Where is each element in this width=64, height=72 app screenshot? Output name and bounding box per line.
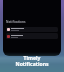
staticText: Timely Notifications (15, 55, 49, 68)
button[interactable] (6, 27, 58, 32)
button[interactable] (6, 33, 58, 39)
staticText: Notifications (6, 20, 26, 24)
